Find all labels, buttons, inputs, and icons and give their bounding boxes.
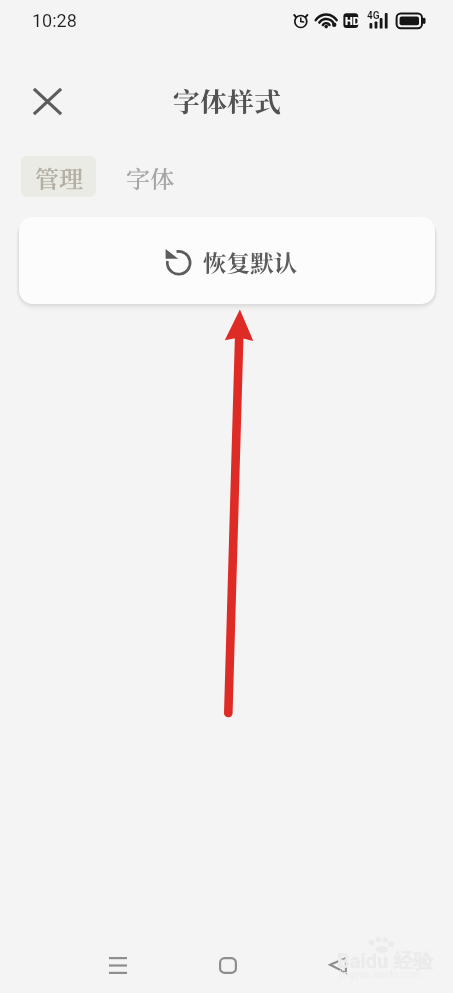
staticText: 4G — [367, 10, 380, 22]
staticText: 字体 — [126, 160, 174, 194]
button[interactable]: Home — [195, 933, 260, 993]
staticText: 字体样式 — [173, 81, 281, 120]
button[interactable]: Close — [19, 73, 75, 129]
staticText: Baidu 经验 — [337, 949, 434, 974]
button[interactable]: 管理 — [21, 156, 96, 197]
button[interactable]: Back — [305, 933, 370, 993]
button[interactable]: 字体 — [111, 156, 189, 197]
staticText: 恢复默认 — [203, 245, 297, 279]
staticText: jingyan.baidu.com — [339, 969, 421, 981]
staticText: 管理 — [35, 160, 83, 194]
button[interactable]: 恢复默认 — [19, 217, 435, 304]
staticText: HD — [345, 15, 360, 28]
button[interactable]: Recent apps — [85, 933, 150, 993]
staticText: 10:28 — [32, 10, 77, 31]
